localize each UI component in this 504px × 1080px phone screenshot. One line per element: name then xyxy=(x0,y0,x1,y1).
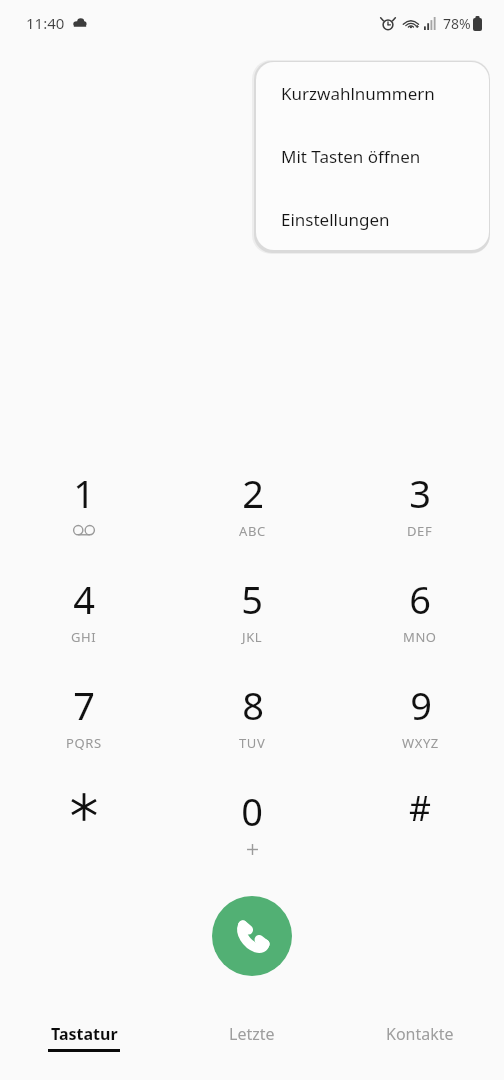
button[interactable]: 9 xyxy=(336,664,504,770)
staticText: Mit Tasten öffnen xyxy=(281,145,421,168)
staticText: PQRS xyxy=(66,734,102,752)
staticText: 8 xyxy=(242,679,264,731)
staticText: Kurzwahlnummern xyxy=(281,82,435,105)
staticText: Kontakte xyxy=(386,1023,454,1045)
button[interactable]: Kontakte xyxy=(336,994,504,1080)
button[interactable]: Tastatur xyxy=(0,994,168,1080)
button[interactable]: 2 xyxy=(168,452,336,558)
staticText: DEF xyxy=(407,522,433,540)
staticText: 5 xyxy=(241,573,263,625)
button[interactable]: 1 xyxy=(0,452,168,558)
staticText: Einstellungen xyxy=(281,208,390,231)
staticText: 78% xyxy=(443,14,471,33)
staticText: 3 xyxy=(409,467,431,519)
button[interactable]: 7 xyxy=(0,664,168,770)
staticText: Tastatur xyxy=(51,1023,118,1045)
staticText: 11:40 xyxy=(26,13,65,33)
staticText: TUV xyxy=(239,734,266,752)
staticText: ABC xyxy=(239,522,266,540)
button[interactable]: 4 xyxy=(0,558,168,664)
staticText: WXYZ xyxy=(402,734,439,752)
staticText: 4 xyxy=(73,573,95,625)
button[interactable]: 5 xyxy=(168,558,336,664)
button[interactable]: Mit Tasten öffnen xyxy=(256,125,489,188)
staticText: # xyxy=(409,785,431,831)
button[interactable]: Einstellungen xyxy=(256,188,489,250)
button[interactable]: 3 xyxy=(336,452,504,558)
staticText: JKL xyxy=(242,628,263,646)
staticText: 2 xyxy=(242,467,264,519)
staticText: 6 xyxy=(409,573,431,625)
button[interactable]: 0 xyxy=(168,770,336,870)
button[interactable]: 8 xyxy=(168,664,336,770)
button[interactable]: 6 xyxy=(336,558,504,664)
staticText: Letzte xyxy=(229,1023,275,1045)
button[interactable]: # xyxy=(336,770,504,870)
button[interactable]: Anrufen xyxy=(212,896,292,976)
staticText: 0 xyxy=(241,785,263,837)
staticText: 1 xyxy=(73,467,95,519)
button[interactable] xyxy=(0,770,168,870)
staticText: 7 xyxy=(73,679,95,731)
staticText: GHI xyxy=(71,628,97,646)
staticText: MNO xyxy=(403,628,437,646)
staticText: 9 xyxy=(410,679,432,731)
button[interactable]: Letzte xyxy=(168,994,336,1080)
button[interactable]: Kurzwahlnummern xyxy=(256,62,489,125)
